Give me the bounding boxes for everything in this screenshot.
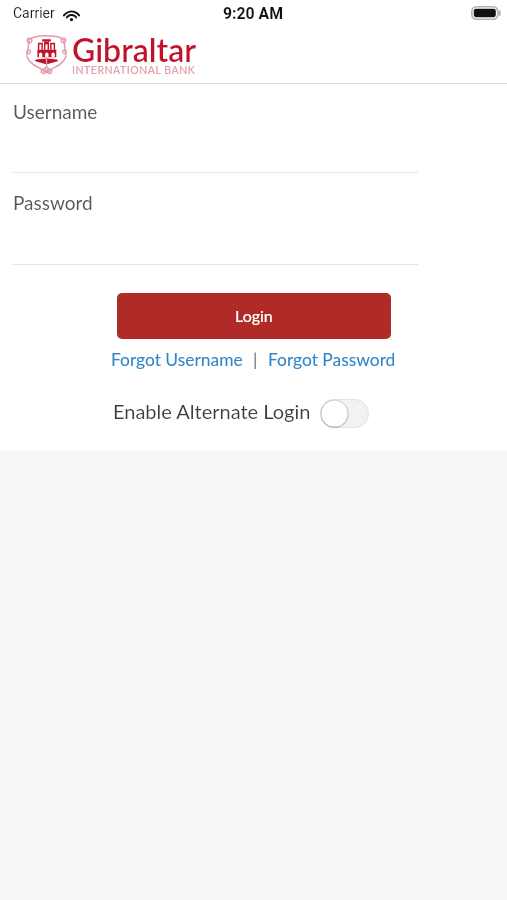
staticText: Login xyxy=(235,306,273,325)
button[interactable]: Forgot Password xyxy=(267,349,397,370)
button[interactable]: Enable Alternate Login xyxy=(320,399,369,428)
staticText: 9:20 AM xyxy=(223,4,284,23)
button[interactable]: Forgot Username xyxy=(110,349,244,370)
staticText: Forgot Username xyxy=(111,349,243,370)
staticText: Carrier xyxy=(13,5,55,21)
staticText: Password xyxy=(13,191,93,214)
staticText: Gibraltar xyxy=(72,30,197,68)
button[interactable]: Login xyxy=(117,293,391,339)
staticText: | xyxy=(244,349,267,370)
staticText: Forgot Password xyxy=(268,349,396,370)
staticText: INTERNATIONAL BANK xyxy=(72,64,196,77)
staticText: Username xyxy=(13,100,98,123)
staticText: Enable Alternate Login xyxy=(113,399,311,423)
